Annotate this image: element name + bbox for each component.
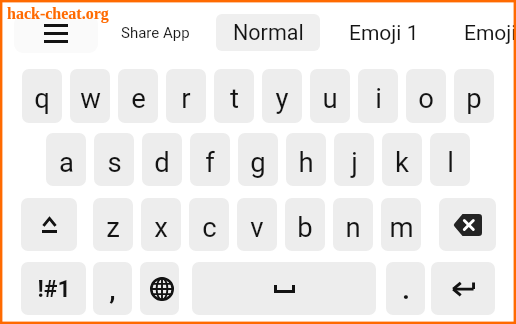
button[interactable]: v [237, 198, 277, 251]
staticText: v [250, 211, 264, 243]
button[interactable]: Emoji 2 [464, 16, 516, 50]
button[interactable]: Enter [431, 262, 495, 315]
staticText: . [402, 275, 410, 305]
button[interactable]: k [382, 133, 422, 186]
staticText: e [131, 82, 146, 114]
button[interactable]: r [166, 69, 206, 123]
staticText: Emoji 1 [349, 21, 419, 46]
staticText: , [109, 275, 116, 305]
staticText: c [202, 211, 217, 243]
button[interactable]: f [190, 133, 230, 186]
staticText: t [230, 82, 239, 114]
staticText: r [181, 82, 191, 114]
button[interactable]: l [430, 133, 470, 186]
button[interactable]: u [310, 69, 350, 123]
staticText: q [34, 82, 50, 114]
button[interactable]: w [70, 69, 110, 123]
staticText: p [466, 82, 482, 114]
button[interactable]: s [94, 133, 134, 186]
button[interactable]: c [189, 198, 229, 251]
button[interactable]: g [238, 133, 278, 186]
button[interactable]: z [93, 198, 133, 251]
staticText: g [250, 146, 266, 178]
button[interactable]: i [358, 69, 398, 123]
staticText: n [345, 211, 361, 243]
staticText: Share App [121, 24, 190, 42]
button[interactable]: b [285, 198, 325, 251]
button[interactable]: Menu [14, 15, 98, 53]
staticText: d [154, 146, 170, 178]
button[interactable]: , [93, 262, 132, 315]
button[interactable]: d [142, 133, 182, 186]
button[interactable]: Space [192, 262, 376, 315]
staticText: !#1 [37, 276, 71, 303]
staticText: w [80, 82, 101, 114]
staticText: o [418, 82, 434, 114]
button[interactable]: Change language [140, 262, 179, 315]
staticText: Emoji 2 [464, 21, 516, 46]
staticText: h [298, 146, 314, 178]
button[interactable]: a [46, 133, 86, 186]
staticText: i [375, 82, 382, 114]
staticText: k [395, 146, 409, 178]
button[interactable]: m [381, 198, 421, 251]
button[interactable]: e [118, 69, 158, 123]
staticText: x [154, 211, 168, 243]
button[interactable]: Backspace [439, 198, 496, 251]
button[interactable]: . [386, 262, 425, 315]
button[interactable]: Share App [121, 16, 190, 50]
button[interactable]: Shift [21, 198, 77, 251]
button[interactable]: x [141, 198, 181, 251]
button[interactable]: y [262, 69, 302, 123]
button[interactable]: n [333, 198, 373, 251]
staticText: s [107, 146, 122, 178]
staticText: hack-cheat.org [7, 5, 109, 23]
button[interactable]: !#1 [21, 262, 86, 315]
staticText: b [297, 211, 313, 243]
staticText: z [106, 211, 120, 243]
button[interactable]: p [454, 69, 494, 123]
staticText: Normal [233, 20, 304, 45]
button[interactable]: h [286, 133, 326, 186]
staticText: f [205, 146, 215, 178]
button[interactable]: Normal [216, 14, 320, 51]
button[interactable]: t [214, 69, 254, 123]
staticText: m [389, 211, 414, 243]
button[interactable]: Emoji 1 [349, 16, 419, 50]
button[interactable]: o [406, 69, 446, 123]
staticText: l [447, 146, 454, 178]
staticText: j [351, 146, 358, 178]
staticText: u [322, 82, 338, 114]
button[interactable]: q [22, 69, 62, 123]
button[interactable]: j [334, 133, 374, 186]
staticText: y [275, 82, 289, 114]
staticText: a [59, 146, 74, 178]
